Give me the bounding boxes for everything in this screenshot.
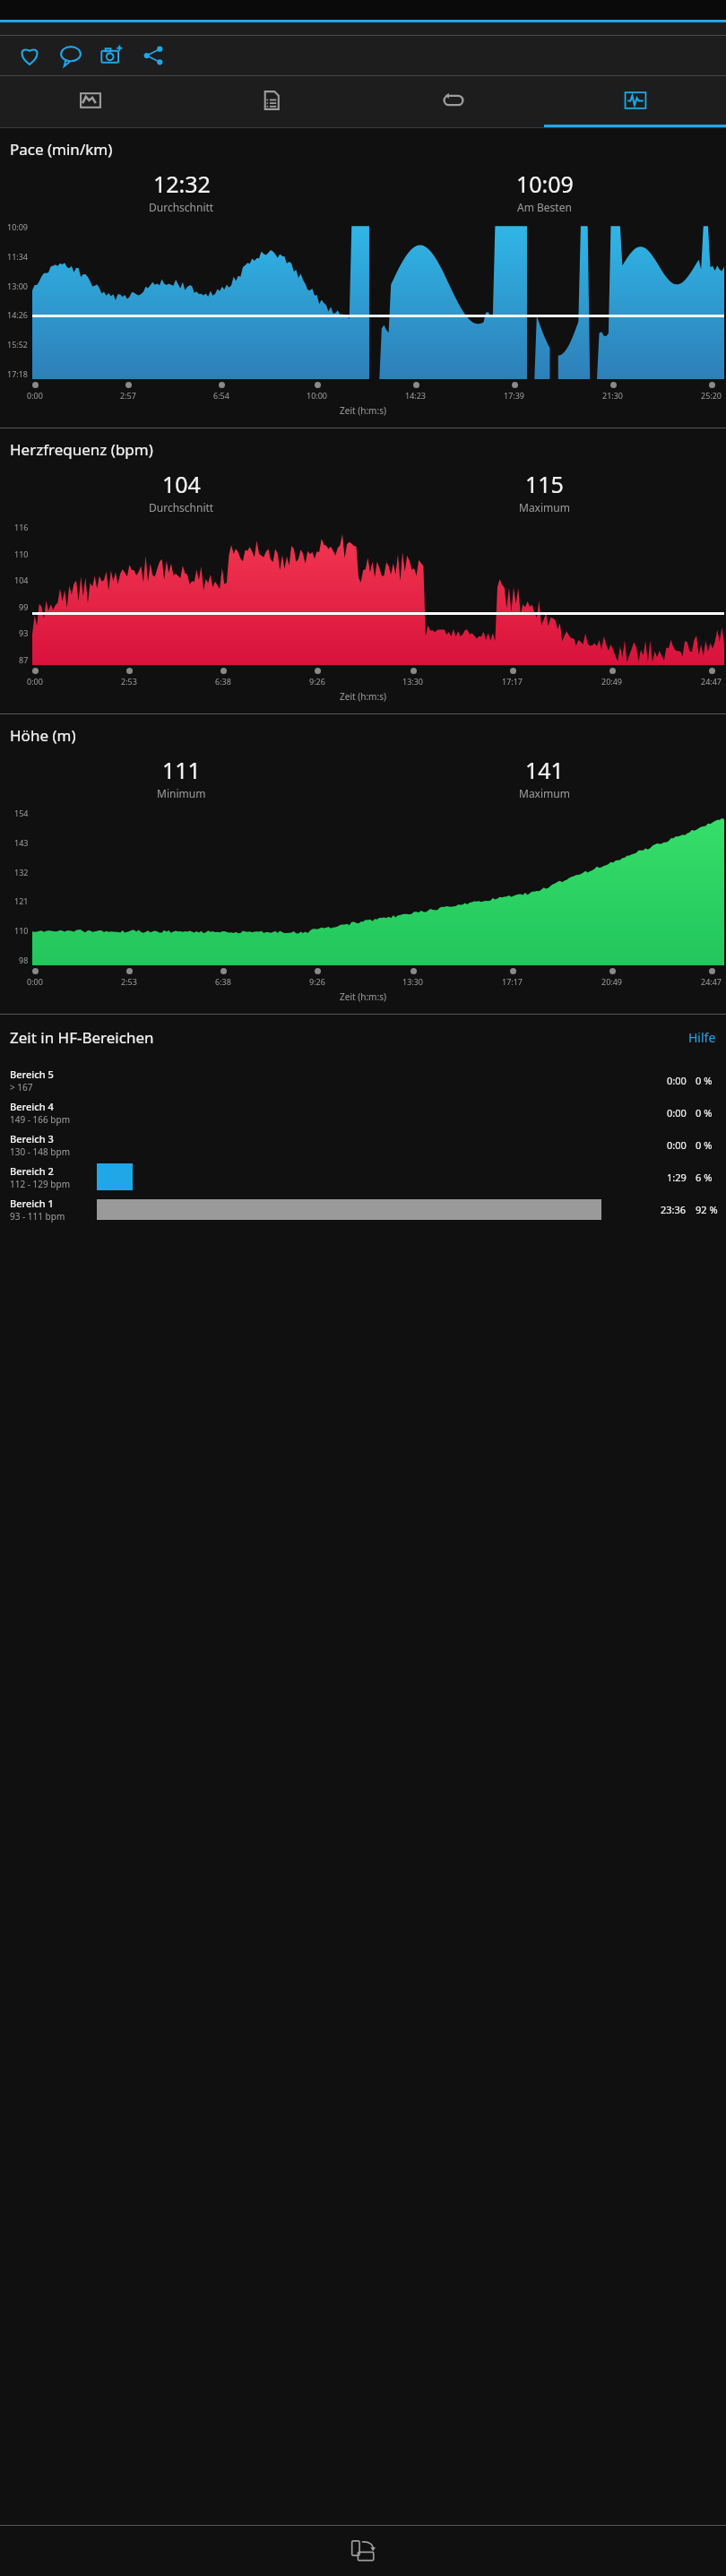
staticText: 93 [19, 627, 29, 638]
button[interactable]: Share [133, 36, 174, 75]
staticText: 99 [19, 601, 29, 612]
staticText: 112 - 129 bpm [10, 1178, 70, 1190]
staticText: Maximum [519, 786, 570, 800]
staticText: 115 [525, 469, 564, 499]
staticText: 0:00 [667, 1074, 687, 1087]
staticText: Bereich 5 [10, 1068, 54, 1081]
button[interactable]: Comment [50, 36, 91, 75]
staticText: 87 [19, 654, 29, 665]
staticText: 24:47 [701, 976, 722, 987]
staticText: 2:53 [121, 676, 137, 687]
staticText: > 167 [10, 1081, 33, 1094]
staticText: Zeit in HF-Bereichen [10, 1027, 154, 1048]
staticText: 13:30 [402, 976, 424, 987]
staticText: 13:30 [402, 676, 424, 687]
staticText: 10:09 [516, 169, 574, 199]
staticText: 23:36 [661, 1203, 687, 1216]
staticText: Am Besten [517, 200, 572, 214]
staticText: Minimum [157, 786, 206, 800]
button[interactable]: Hilfe [688, 1029, 716, 1046]
staticText: 92 % [696, 1203, 718, 1216]
staticText: 93 - 111 bpm [10, 1210, 65, 1223]
staticText: Höhe (m) [10, 725, 76, 746]
staticText: Zeit (h:m:s) [0, 690, 726, 703]
button[interactable]: Bereich 3 [0, 1128, 726, 1161]
staticText: 14:26 [7, 309, 29, 320]
button[interactable]: Bereich 1 [0, 1193, 726, 1225]
button[interactable]: Bereich 4 [0, 1096, 726, 1128]
staticText: 10:09 [7, 221, 29, 232]
staticText: 25:20 [701, 390, 722, 401]
staticText: 17:17 [502, 676, 523, 687]
staticText: 6:54 [213, 390, 229, 401]
staticText: 11:34 [7, 251, 29, 262]
staticText: Pace (min/km) [10, 139, 113, 160]
staticText: 17:17 [502, 976, 523, 987]
button[interactable]: Rotate screen [343, 2531, 383, 2571]
staticText: 0:00 [27, 676, 43, 687]
staticText: 149 - 166 bpm [10, 1113, 70, 1126]
staticText: 0:00 [27, 976, 43, 987]
staticText: 0:00 [27, 390, 43, 401]
staticText: 98 [19, 955, 29, 965]
staticText: Zeit (h:m:s) [0, 404, 726, 417]
staticText: 0:00 [667, 1138, 687, 1152]
staticText: Bereich 1 [10, 1197, 54, 1210]
button[interactable]: Laps [362, 76, 544, 125]
button[interactable]: Bereich 5 [0, 1064, 726, 1096]
staticText: 111 [162, 755, 201, 785]
button[interactable]: Details [181, 76, 362, 125]
staticText: 21:30 [602, 390, 624, 401]
button[interactable]: Add photo [91, 36, 133, 75]
staticText: 12:32 [153, 169, 211, 199]
staticText: Bereich 4 [10, 1100, 54, 1113]
staticText: Hilfe [688, 1029, 716, 1046]
staticText: 20:49 [601, 676, 623, 687]
staticText: 0 % [696, 1138, 713, 1152]
staticText: 13:00 [7, 281, 29, 291]
staticText: 143 [14, 837, 29, 848]
staticText: 6:38 [215, 976, 231, 987]
button[interactable]: Bereich 2 [0, 1161, 726, 1193]
staticText: 121 [14, 895, 29, 906]
staticText: 20:49 [601, 976, 623, 987]
staticText: Bereich 2 [10, 1164, 54, 1178]
staticText: 24:47 [701, 676, 722, 687]
staticText: Zeit (h:m:s) [0, 990, 726, 1003]
staticText: 130 - 148 bpm [10, 1145, 70, 1158]
staticText: 6 % [696, 1171, 713, 1184]
staticText: 2:53 [121, 976, 137, 987]
staticText: 110 [14, 549, 29, 559]
staticText: 0:00 [667, 1106, 687, 1119]
staticText: 15:52 [7, 339, 29, 350]
staticText: 14:23 [405, 390, 427, 401]
staticText: 17:39 [504, 390, 525, 401]
staticText: 0 % [696, 1106, 713, 1119]
staticText: 17:18 [7, 368, 29, 379]
staticText: 116 [14, 522, 29, 532]
staticText: Durchschnitt [149, 500, 214, 514]
staticText: 104 [162, 469, 201, 499]
staticText: 9:26 [309, 676, 325, 687]
button[interactable]: Map [0, 76, 181, 125]
staticText: 104 [14, 575, 29, 585]
staticText: Herzfrequenz (bpm) [10, 439, 153, 460]
staticText: Maximum [519, 500, 570, 514]
staticText: 9:26 [309, 976, 325, 987]
staticText: 154 [14, 808, 29, 818]
button[interactable]: Charts [544, 76, 726, 125]
button[interactable]: Like [9, 36, 50, 75]
staticText: 6:38 [215, 676, 231, 687]
staticText: 141 [525, 755, 564, 785]
staticText: 2:57 [120, 390, 136, 401]
staticText: 0 % [696, 1074, 713, 1087]
staticText: 1:29 [667, 1171, 687, 1184]
staticText: Durchschnitt [149, 200, 214, 214]
staticText: 132 [14, 867, 29, 877]
staticText: Bereich 3 [10, 1132, 54, 1145]
staticText: 110 [14, 925, 29, 936]
staticText: 10:00 [307, 390, 328, 401]
